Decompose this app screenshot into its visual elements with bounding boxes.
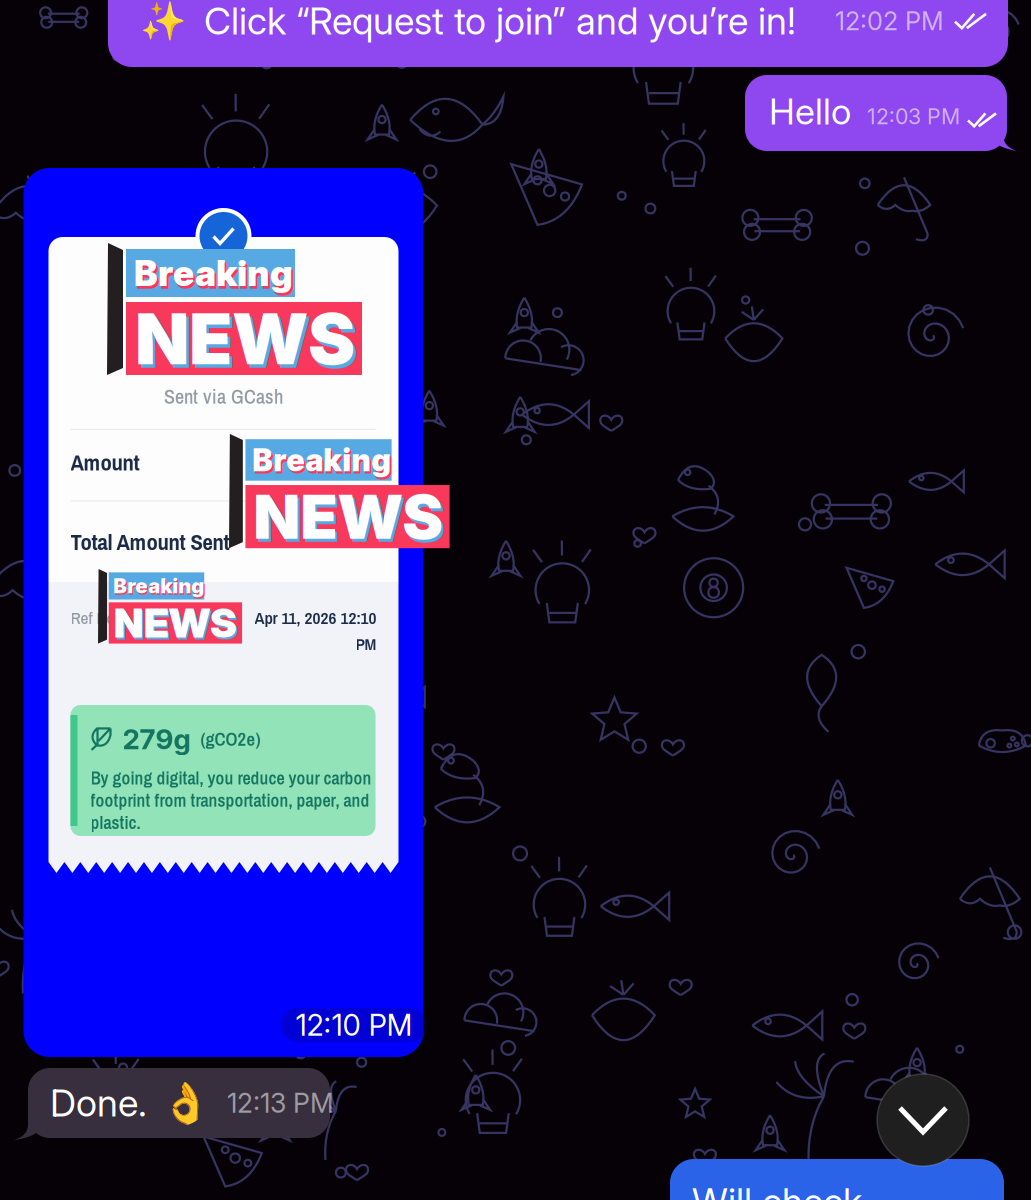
staticText: 12:03 PM xyxy=(867,103,960,129)
staticText: Total Amount Sent xyxy=(70,526,229,557)
staticText: ✨ xyxy=(140,0,186,43)
staticText: (gCO2e) xyxy=(200,726,260,751)
staticText: Breaking xyxy=(136,254,295,297)
staticText: By going digital, you reduce your carbon xyxy=(90,766,371,790)
staticText: plastic. xyxy=(90,810,140,835)
staticText: Will check xyxy=(692,1179,862,1200)
staticText: 279g xyxy=(122,722,190,756)
staticText: Breaking xyxy=(113,574,204,598)
staticText: NEWS xyxy=(115,601,238,649)
staticText: Apr 11, 2026 12:10 xyxy=(254,606,376,629)
staticText: Breaking xyxy=(114,575,205,600)
staticText: 12:02 PM xyxy=(835,6,944,36)
staticText: NEWS xyxy=(253,480,443,554)
staticText: Ref No. xyxy=(70,606,118,629)
staticText: 12:13 PM xyxy=(227,1087,334,1119)
staticText: footprint from transportation, paper, an… xyxy=(90,788,369,812)
staticText: 12:10 PM xyxy=(295,1007,412,1043)
staticText: Hello xyxy=(769,90,851,133)
staticText: Breaking xyxy=(254,443,393,481)
staticText: NEWS xyxy=(114,599,237,647)
staticText: NEWS xyxy=(135,296,355,381)
staticText: PM xyxy=(355,632,376,656)
staticText: Breaking xyxy=(134,251,293,295)
button[interactable]: Scroll to bottom xyxy=(877,1074,969,1166)
staticText: NEWS xyxy=(138,299,358,385)
staticText: Done. xyxy=(50,1080,147,1126)
staticText: 👌 xyxy=(161,1080,211,1126)
staticText: NEWS xyxy=(256,483,446,557)
staticText: Amount xyxy=(70,447,139,477)
staticText: Sent via GCash xyxy=(164,383,283,410)
staticText: Breaking xyxy=(252,441,391,479)
staticText: Click “Request to join” and you’re in! xyxy=(204,0,796,44)
